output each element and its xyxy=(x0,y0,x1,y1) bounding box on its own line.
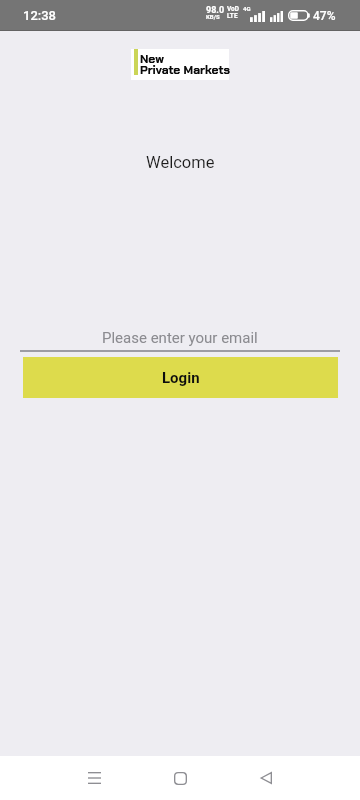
staticText: 4G xyxy=(243,5,251,12)
staticText: Private Markets xyxy=(140,62,230,78)
staticText: 12:38 xyxy=(23,8,57,23)
button[interactable]: Login xyxy=(23,357,338,398)
staticText: KB/S xyxy=(206,13,220,20)
button[interactable]: Recent apps xyxy=(50,756,138,800)
staticText: LTE xyxy=(227,12,238,20)
staticText: New xyxy=(140,51,164,67)
staticText: New xyxy=(140,51,164,67)
staticText: Welcome xyxy=(146,153,215,172)
staticText: Login xyxy=(162,369,200,387)
button[interactable]: Home xyxy=(136,756,224,800)
staticText: VoD xyxy=(227,5,240,13)
staticText: Private Markets xyxy=(140,62,230,78)
button[interactable]: Please enter your email xyxy=(20,324,340,352)
staticText: 98.0 xyxy=(206,5,225,16)
staticText: 47% xyxy=(313,9,336,23)
button[interactable]: New Private Markets xyxy=(131,49,229,80)
staticText: Please enter your email xyxy=(102,329,258,347)
button[interactable]: Back xyxy=(222,756,310,800)
